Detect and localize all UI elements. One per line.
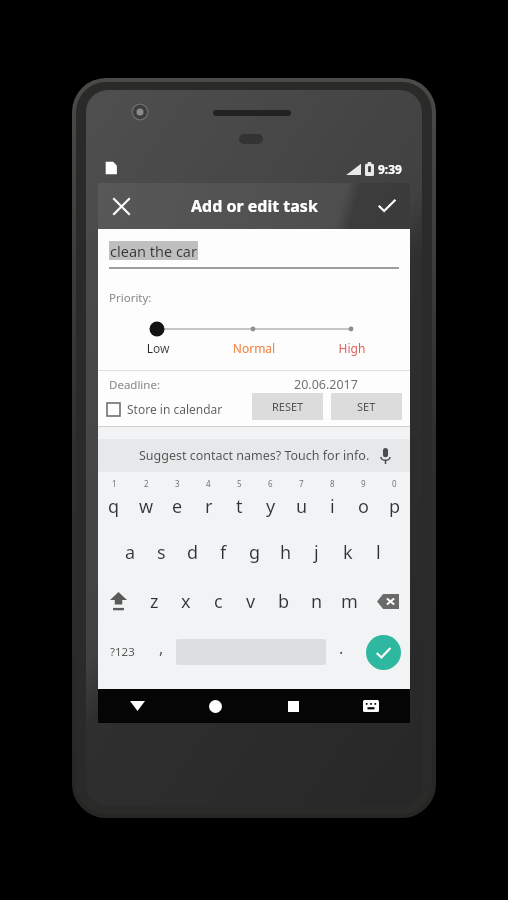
button[interactable]: Back: [98, 689, 176, 723]
staticText: ?123: [110, 644, 135, 660]
staticText: c: [214, 589, 223, 614]
staticText: 2: [144, 478, 149, 489]
staticText: Priority:: [109, 290, 152, 306]
button[interactable]: Home: [176, 689, 254, 723]
staticText: f: [220, 540, 227, 565]
staticText: ,: [159, 637, 164, 659]
staticText: clean the car: [110, 241, 197, 260]
button[interactable]: c: [202, 577, 234, 626]
staticText: Suggest contact names? Touch for info.: [139, 447, 370, 464]
button[interactable]: z: [138, 577, 170, 626]
button[interactable]: 1: [98, 472, 130, 528]
button[interactable]: SET: [331, 393, 402, 420]
staticText: y: [266, 494, 276, 519]
staticText: g: [249, 540, 261, 565]
button[interactable]: ?123: [98, 626, 146, 678]
staticText: w: [139, 494, 154, 519]
staticText: b: [278, 589, 290, 614]
staticText: l: [376, 540, 381, 565]
button[interactable]: Recents: [254, 689, 332, 723]
button[interactable]: Voice input: [374, 445, 396, 467]
button[interactable]: ,: [146, 626, 176, 678]
staticText: j: [314, 540, 319, 565]
button[interactable]: Enter: [366, 635, 401, 670]
staticText: 7: [299, 478, 304, 489]
button[interactable]: l: [363, 528, 394, 577]
staticText: 20.06.2017: [294, 376, 358, 393]
staticText: .: [339, 637, 344, 659]
staticText: Deadline:: [109, 377, 161, 393]
staticText: Normal: [226, 340, 282, 356]
staticText: o: [358, 494, 369, 519]
button[interactable]: 3: [162, 472, 193, 528]
staticText: SET: [357, 399, 376, 414]
staticText: 8: [330, 478, 335, 489]
button[interactable]: h: [270, 528, 301, 577]
button[interactable]: 2: [130, 472, 162, 528]
button[interactable]: 8: [317, 472, 348, 528]
button[interactable]: g: [239, 528, 270, 577]
staticText: e: [172, 494, 183, 519]
button[interactable]: Backspace: [366, 577, 410, 626]
staticText: q: [108, 494, 120, 519]
staticText: a: [125, 540, 136, 565]
staticText: u: [296, 494, 308, 519]
staticText: r: [205, 494, 213, 519]
staticText: 4: [206, 478, 211, 489]
staticText: 9: [361, 478, 366, 489]
button[interactable]: m: [333, 577, 366, 626]
button[interactable]: x: [170, 577, 202, 626]
button[interactable]: RESET: [252, 393, 323, 420]
button[interactable]: Close: [98, 183, 144, 229]
button[interactable]: b: [267, 577, 300, 626]
staticText: 0: [392, 478, 397, 489]
button[interactable]: s: [146, 528, 177, 577]
staticText: 6: [268, 478, 273, 489]
button[interactable]: k: [332, 528, 363, 577]
staticText: 9:39: [378, 161, 402, 177]
button[interactable]: f: [208, 528, 239, 577]
staticText: d: [187, 540, 199, 565]
staticText: x: [181, 589, 191, 614]
button[interactable]: Switch keyboard: [332, 689, 410, 723]
staticText: m: [341, 589, 358, 614]
button[interactable]: n: [300, 577, 333, 626]
staticText: t: [236, 494, 243, 519]
staticText: z: [150, 589, 159, 614]
button[interactable]: Priority slider: [150, 321, 356, 337]
staticText: h: [280, 540, 292, 565]
button[interactable]: 5: [224, 472, 255, 528]
button[interactable]: d: [177, 528, 208, 577]
button[interactable]: v: [234, 577, 267, 626]
staticText: 1: [112, 478, 117, 489]
staticText: 3: [175, 478, 180, 489]
staticText: 5: [237, 478, 242, 489]
staticText: s: [157, 540, 166, 565]
button[interactable]: j: [301, 528, 332, 577]
staticText: RESET: [272, 399, 304, 414]
button[interactable]: 4: [193, 472, 224, 528]
button[interactable]: a: [114, 528, 146, 577]
staticText: Add or edit task: [191, 195, 318, 217]
button[interactable]: Shift: [98, 577, 138, 626]
staticText: i: [330, 494, 335, 519]
staticText: Low: [142, 340, 174, 356]
button[interactable]: Suggest contact names? Touch for info.: [98, 439, 410, 472]
button[interactable]: 0: [379, 472, 410, 528]
button[interactable]: 9: [348, 472, 379, 528]
button[interactable]: 7: [286, 472, 317, 528]
staticText: n: [311, 589, 323, 614]
button[interactable]: .: [326, 626, 356, 678]
staticText: k: [343, 540, 353, 565]
staticText: High: [332, 340, 372, 356]
button[interactable]: 6: [255, 472, 286, 528]
staticText: v: [246, 589, 256, 614]
button[interactable]: Store in calendar: [107, 397, 223, 421]
button[interactable]: Save: [364, 183, 410, 229]
staticText: Store in calendar: [127, 401, 223, 417]
staticText: p: [389, 494, 401, 519]
